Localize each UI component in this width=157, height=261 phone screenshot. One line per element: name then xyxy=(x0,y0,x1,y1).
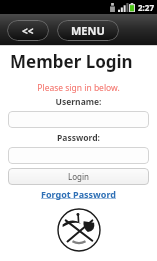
staticText: MENU xyxy=(71,23,105,38)
button[interactable]: Text input xyxy=(8,111,149,128)
staticText: 2:27 xyxy=(138,2,154,13)
button[interactable]: Back xyxy=(7,20,49,41)
staticText: Member Login xyxy=(10,50,133,73)
staticText: Please sign in below. xyxy=(0,82,157,94)
staticText: Username: xyxy=(0,96,157,108)
button[interactable]: MENU xyxy=(57,20,119,41)
staticText: Login xyxy=(68,171,89,182)
button[interactable]: Text input xyxy=(8,147,149,164)
button[interactable]: Forgot Password xyxy=(0,188,157,200)
button[interactable]: Login xyxy=(8,168,149,185)
staticText: Password: xyxy=(0,132,157,144)
staticText: << xyxy=(22,24,34,38)
